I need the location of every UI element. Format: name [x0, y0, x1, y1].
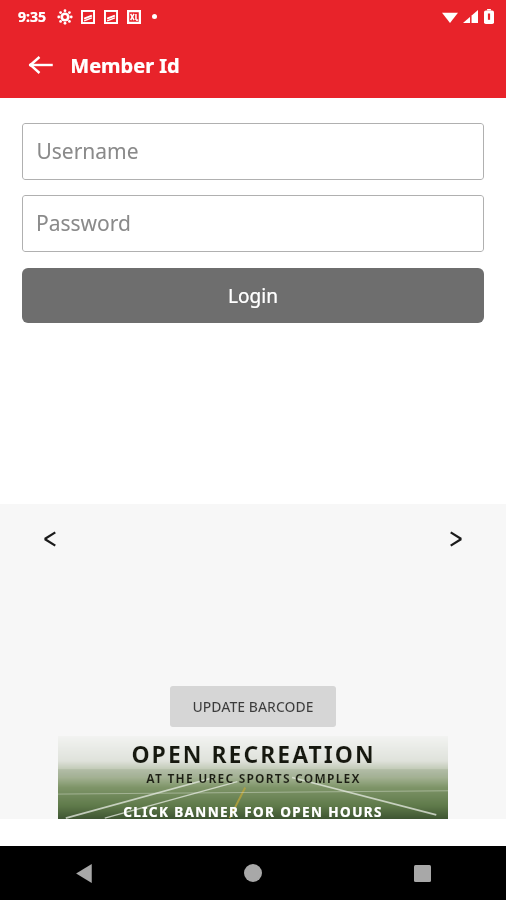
- button[interactable]: Back: [18, 42, 64, 88]
- staticText: UPDATE BARCODE: [192, 697, 314, 716]
- staticText: AT THE UREC SPORTS COMPLEX: [146, 770, 361, 786]
- button[interactable]: Back: [61, 850, 107, 896]
- staticText: Member Id: [70, 52, 180, 79]
- staticText: 9:35: [18, 7, 46, 26]
- button[interactable]: Login: [22, 268, 484, 323]
- staticText: OPEN RECREATION: [131, 738, 376, 769]
- button[interactable]: Recent apps: [399, 850, 445, 896]
- button[interactable]: Next: [434, 517, 478, 561]
- button[interactable]: Username: [22, 123, 484, 180]
- button[interactable]: Home: [230, 850, 276, 896]
- button[interactable]: Password: [22, 195, 484, 252]
- staticText: Login: [228, 283, 278, 309]
- button[interactable]: Previous: [28, 517, 72, 561]
- staticText: Password: [36, 209, 131, 238]
- staticText: Username: [36, 137, 139, 166]
- button[interactable]: UPDATE BARCODE: [170, 686, 336, 727]
- staticText: CLICK BANNER FOR OPEN HOURS: [123, 803, 383, 819]
- button[interactable]: Open Recreation banner: [58, 736, 448, 819]
